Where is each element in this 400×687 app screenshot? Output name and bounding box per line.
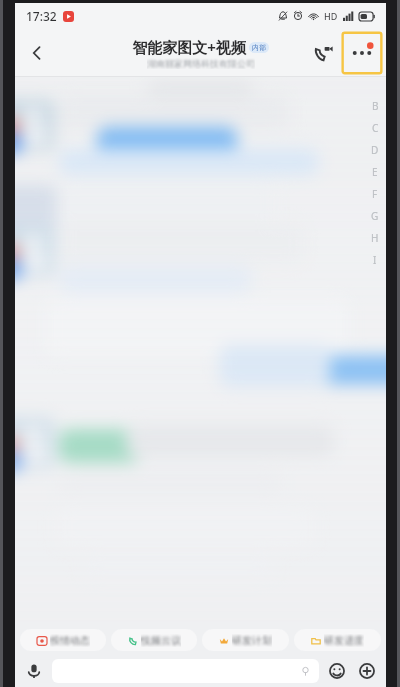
staticText: 研发计划 bbox=[232, 634, 272, 647]
staticText: E bbox=[372, 165, 378, 179]
button[interactable]: Emoji bbox=[325, 659, 349, 683]
button[interactable]: G bbox=[369, 205, 381, 227]
button[interactable]: 悦频云议 bbox=[111, 629, 197, 651]
button[interactable]: B bbox=[369, 95, 381, 117]
button[interactable]: E bbox=[369, 161, 381, 183]
button[interactable]: 研发进度 bbox=[294, 629, 381, 651]
button[interactable]: Video call bbox=[306, 36, 340, 70]
staticText: B bbox=[372, 99, 379, 113]
button[interactable]: F bbox=[369, 183, 381, 205]
button[interactable]: C bbox=[369, 117, 381, 139]
staticText: 悦频云议 bbox=[141, 634, 181, 647]
button[interactable]: 研发计划 bbox=[202, 629, 289, 651]
button[interactable]: 投情动态 bbox=[20, 629, 106, 651]
button[interactable]: Add bbox=[355, 659, 379, 683]
button[interactable]: More options bbox=[340, 30, 384, 76]
button[interactable]: H bbox=[369, 227, 381, 249]
staticText: 17:32 bbox=[26, 8, 57, 24]
staticText: F bbox=[372, 187, 378, 201]
staticText: D bbox=[371, 143, 379, 157]
button[interactable]: I bbox=[369, 249, 381, 271]
staticText: 研发进度 bbox=[324, 634, 364, 647]
staticText: I bbox=[373, 253, 377, 267]
staticText: HD bbox=[324, 10, 338, 22]
button[interactable]: Back bbox=[15, 31, 59, 75]
staticText: 内部 bbox=[252, 43, 266, 52]
button[interactable]: Voice input bbox=[22, 659, 46, 683]
staticText: G bbox=[371, 209, 379, 223]
staticText: H bbox=[371, 231, 379, 245]
staticText: 湖南丽家网络科技有限公司 bbox=[147, 58, 255, 69]
staticText: 智能家图文+视频 bbox=[132, 37, 246, 57]
staticText: C bbox=[372, 121, 379, 135]
button[interactable]: D bbox=[369, 139, 381, 161]
staticText: 投情动态 bbox=[50, 634, 90, 647]
